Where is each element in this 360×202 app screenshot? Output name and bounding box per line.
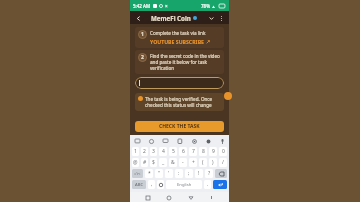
staticText: 6 [182, 148, 185, 155]
button[interactable]: ; [185, 169, 193, 178]
button[interactable]: 1 [132, 147, 139, 156]
staticText: Find the secret code in the video [150, 53, 220, 59]
staticText: 9 [212, 148, 215, 155]
button[interactable]: English [166, 180, 202, 189]
button[interactable]: 3 [150, 147, 157, 156]
staticText: ) [212, 159, 214, 166]
staticText: ; [188, 170, 190, 177]
button[interactable]: Theme [204, 137, 212, 145]
button[interactable]: + [189, 158, 197, 167]
staticText: 7 [192, 148, 195, 155]
button[interactable]: Stickers [147, 137, 155, 145]
staticText: The task is being verified. Once [145, 96, 213, 102]
staticText: # [143, 159, 147, 166]
staticText: / [222, 159, 224, 166]
staticText: @ [133, 159, 138, 166]
button[interactable]: GIF [161, 137, 169, 145]
staticText: 5 [172, 148, 175, 155]
staticText: " [158, 170, 161, 177]
button[interactable]: YOUTUBE SUBSCRIBE [150, 38, 210, 45]
button[interactable]: 7 [189, 147, 197, 156]
button[interactable]: - [179, 158, 187, 167]
button[interactable]: 4 [159, 147, 167, 156]
staticText: verification [150, 65, 175, 71]
staticText: 78% [201, 3, 210, 9]
staticText: 0 [222, 148, 225, 155]
staticText: : [178, 170, 180, 177]
button[interactable]: ' [165, 169, 173, 178]
button[interactable]: Back [186, 193, 195, 202]
staticText: $ [152, 159, 155, 166]
staticText: MemeFi Coin [151, 14, 191, 22]
staticText: - [182, 159, 184, 166]
staticText: =\< [134, 171, 141, 177]
button[interactable]: Keyboard layout [133, 137, 141, 145]
button[interactable]: Recent apps [143, 193, 152, 202]
staticText: ! [198, 170, 200, 177]
button[interactable]: ? [205, 169, 213, 178]
button[interactable]: Home [164, 193, 173, 202]
button[interactable]: ! [195, 169, 203, 178]
staticText: 8 [202, 148, 205, 155]
staticText: ABC [135, 182, 144, 188]
button[interactable]: : [175, 169, 183, 178]
staticText: ? [208, 170, 211, 177]
staticText: + [192, 159, 195, 166]
staticText: × [165, 3, 168, 9]
button[interactable]: Clipboard [176, 137, 184, 145]
button[interactable]: @ [132, 158, 139, 167]
staticText: & [171, 159, 175, 166]
button[interactable]: Enter [213, 180, 227, 189]
button[interactable]: Emoji [157, 180, 164, 189]
button[interactable]: More options [216, 13, 226, 23]
staticText: and paste it below for task [150, 59, 207, 65]
staticText: 1 [134, 148, 137, 155]
staticText: YOUTUBE SUBSCRIBE [150, 38, 204, 45]
staticText: _ [162, 159, 165, 166]
staticText: * [148, 170, 151, 177]
staticText: CHECK THE TASK [159, 123, 200, 130]
button[interactable]: # [141, 158, 148, 167]
staticText: 4 [162, 148, 165, 155]
button[interactable]: 9 [209, 147, 217, 156]
staticText: 2 [141, 54, 144, 61]
button[interactable]: ABC [132, 180, 146, 189]
staticText: Complete the task via link [150, 30, 206, 36]
staticText: 1 [141, 31, 144, 38]
button[interactable]: / [219, 158, 227, 167]
button[interactable]: 2 [141, 147, 148, 156]
button[interactable]: & [169, 158, 177, 167]
button[interactable]: $ [150, 158, 157, 167]
staticText: ( [202, 159, 204, 166]
button[interactable]: Back [133, 13, 143, 23]
button[interactable]: ( [199, 158, 207, 167]
staticText: 5:42 AM [133, 3, 151, 9]
staticText: . [207, 181, 209, 188]
button[interactable] [135, 77, 224, 89]
button[interactable]: 5 [169, 147, 177, 156]
button[interactable]: ) [209, 158, 217, 167]
staticText: 2 [143, 148, 146, 155]
button[interactable]: Keyboard hide [207, 193, 216, 202]
button[interactable]: Collapse [206, 13, 216, 23]
button[interactable]: =\< [132, 169, 143, 178]
button[interactable]: 6 [179, 147, 187, 156]
button[interactable]: Voice input [218, 137, 226, 145]
staticText: , [151, 181, 153, 188]
button[interactable]: _ [159, 158, 167, 167]
button[interactable]: , [148, 180, 155, 189]
button[interactable]: 0 [219, 147, 227, 156]
button[interactable]: Backspace [215, 169, 227, 178]
button[interactable]: Settings [190, 137, 198, 145]
button[interactable]: * [145, 169, 153, 178]
button[interactable]: . [204, 180, 211, 189]
button[interactable]: " [155, 169, 163, 178]
staticText: 3 [152, 148, 155, 155]
button[interactable]: CHECK THE TASK [135, 121, 224, 132]
staticText: ' [168, 170, 170, 177]
staticText: English [177, 182, 192, 188]
staticText: checked this status will change [145, 102, 212, 108]
button[interactable]: 8 [199, 147, 207, 156]
